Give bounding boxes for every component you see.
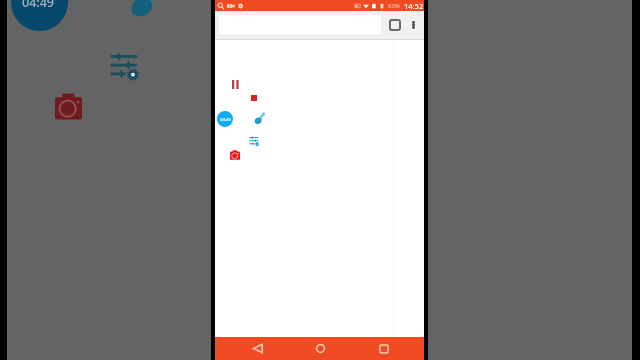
button[interactable]: 04:49 [11,0,68,31]
button[interactable]: Tabs [382,15,402,35]
staticText: 04:49 [22,0,55,11]
button[interactable]: Back [246,337,269,360]
staticText: 04:49 [220,117,231,123]
staticText: 65% [388,2,400,10]
button[interactable]: More options [405,17,421,33]
button[interactable]: Recents [372,337,395,360]
staticText: 14:52 [404,1,424,11]
button[interactable]: Home [309,337,332,360]
button[interactable]: 04:49 [217,111,233,127]
